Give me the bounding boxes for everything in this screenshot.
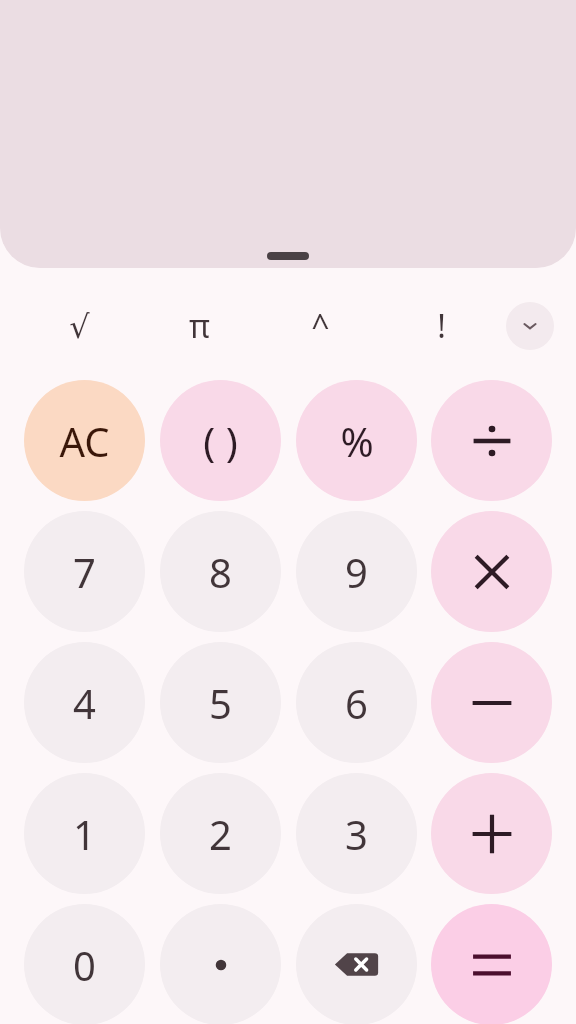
staticText: ! (437, 304, 446, 348)
button[interactable] (431, 773, 552, 894)
staticText: 5 (209, 676, 232, 730)
button[interactable]: AC (24, 380, 145, 501)
button[interactable]: Power (277, 295, 363, 357)
staticText: π (189, 304, 210, 348)
button[interactable] (0, 0, 576, 268)
button[interactable]: Backspace (296, 904, 417, 1024)
button[interactable]: 1 (24, 773, 145, 894)
button[interactable]: Square root (36, 295, 122, 357)
staticText: 3 (345, 807, 368, 861)
button[interactable]: 9 (296, 511, 417, 632)
staticText: √ (69, 308, 90, 345)
button[interactable] (431, 642, 552, 763)
button[interactable] (431, 904, 552, 1024)
staticText: 0 (73, 938, 96, 992)
staticText: 4 (73, 676, 96, 730)
staticText: AC (59, 414, 110, 468)
staticText: 6 (345, 676, 368, 730)
staticText: % (340, 414, 374, 468)
staticText: 7 (73, 545, 96, 599)
button[interactable] (431, 380, 552, 501)
button[interactable]: Pi (156, 295, 242, 357)
button[interactable]: 2 (160, 773, 281, 894)
button[interactable]: 7 (24, 511, 145, 632)
button[interactable]: 0 (24, 904, 145, 1024)
staticText: 1 (73, 807, 96, 861)
button[interactable]: Factorial (398, 295, 484, 357)
staticText: ( ) (203, 414, 238, 468)
button[interactable]: 3 (296, 773, 417, 894)
staticText: 2 (209, 807, 232, 861)
button[interactable]: 4 (24, 642, 145, 763)
button[interactable]: ( ) (160, 380, 281, 501)
button[interactable]: 6 (296, 642, 417, 763)
button[interactable] (431, 511, 552, 632)
button[interactable]: 5 (160, 642, 281, 763)
staticText: 8 (209, 545, 232, 599)
button[interactable] (160, 904, 281, 1024)
button[interactable]: % (296, 380, 417, 501)
staticText: ^ (311, 304, 330, 348)
button[interactable]: Collapse (506, 302, 554, 350)
staticText: 9 (345, 545, 368, 599)
button[interactable]: 8 (160, 511, 281, 632)
